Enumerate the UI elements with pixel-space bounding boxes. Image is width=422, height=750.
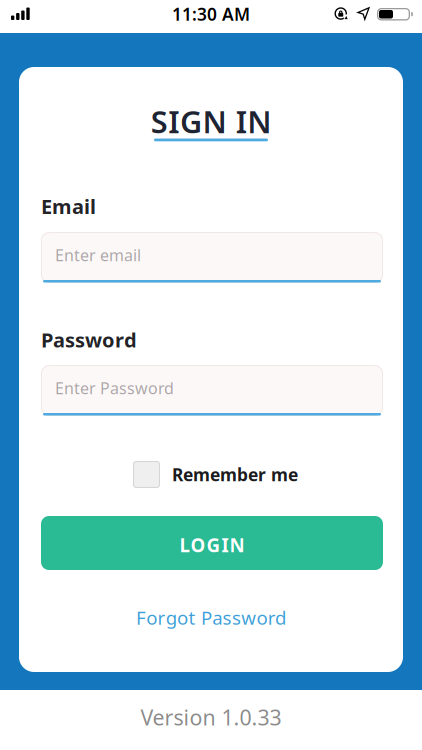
staticText: Version 1.0.33 (140, 703, 281, 731)
button[interactable]: Enter email (41, 232, 383, 283)
staticText: 11:30 AM (172, 2, 250, 25)
staticText: SIGN IN (151, 101, 271, 142)
button[interactable]: Forgot Password (136, 605, 286, 630)
staticText: Password (41, 326, 137, 353)
button[interactable]: LOGIN (41, 516, 383, 570)
staticText: Enter email (55, 244, 141, 266)
staticText: LOGIN (179, 533, 244, 557)
button[interactable]: Remember me (133, 461, 298, 488)
staticText: Enter Password (55, 377, 174, 399)
button[interactable]: Enter Password (41, 365, 383, 416)
staticText: Remember me (172, 463, 298, 486)
staticText: Email (41, 193, 96, 220)
staticText: Forgot Password (136, 605, 286, 630)
